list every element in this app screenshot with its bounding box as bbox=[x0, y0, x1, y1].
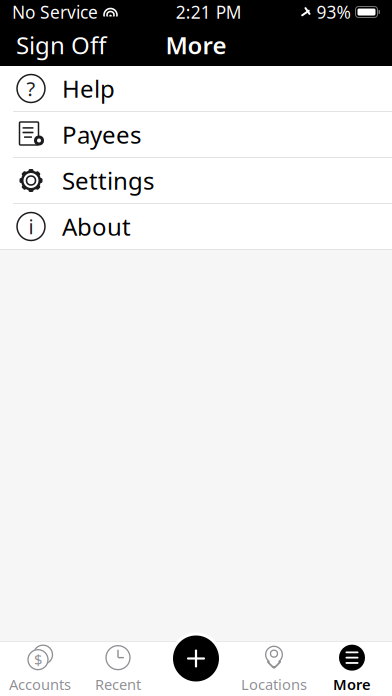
staticText: Accounts bbox=[9, 675, 71, 694]
staticText: No Service bbox=[12, 0, 98, 23]
button[interactable]: Settings bbox=[0, 158, 392, 204]
staticText: Locations bbox=[241, 675, 307, 694]
staticText: i bbox=[28, 213, 33, 240]
button[interactable]: More bbox=[313, 641, 391, 696]
staticText: More bbox=[165, 29, 226, 61]
staticText: More bbox=[333, 675, 371, 694]
staticText: Recent bbox=[95, 675, 141, 694]
button[interactable]: Payees bbox=[0, 112, 392, 158]
button[interactable]: ? bbox=[0, 66, 392, 112]
staticText: ? bbox=[26, 75, 35, 102]
button[interactable]: i bbox=[0, 204, 392, 250]
button[interactable]: Locations bbox=[235, 641, 313, 696]
staticText: Sign Off bbox=[16, 29, 107, 61]
staticText: Settings bbox=[62, 165, 154, 196]
staticText: Help bbox=[62, 73, 115, 104]
button[interactable]: Sign Off bbox=[0, 24, 123, 66]
button[interactable]: $ bbox=[1, 641, 79, 696]
button[interactable]: Recent bbox=[79, 641, 157, 696]
button[interactable]: Add bbox=[168, 630, 224, 686]
staticText: 93% bbox=[316, 0, 350, 23]
staticText: Payees bbox=[62, 119, 141, 150]
staticText: 2:21 PM bbox=[176, 0, 242, 23]
staticText: About bbox=[62, 211, 131, 242]
staticText: $ bbox=[34, 650, 42, 669]
